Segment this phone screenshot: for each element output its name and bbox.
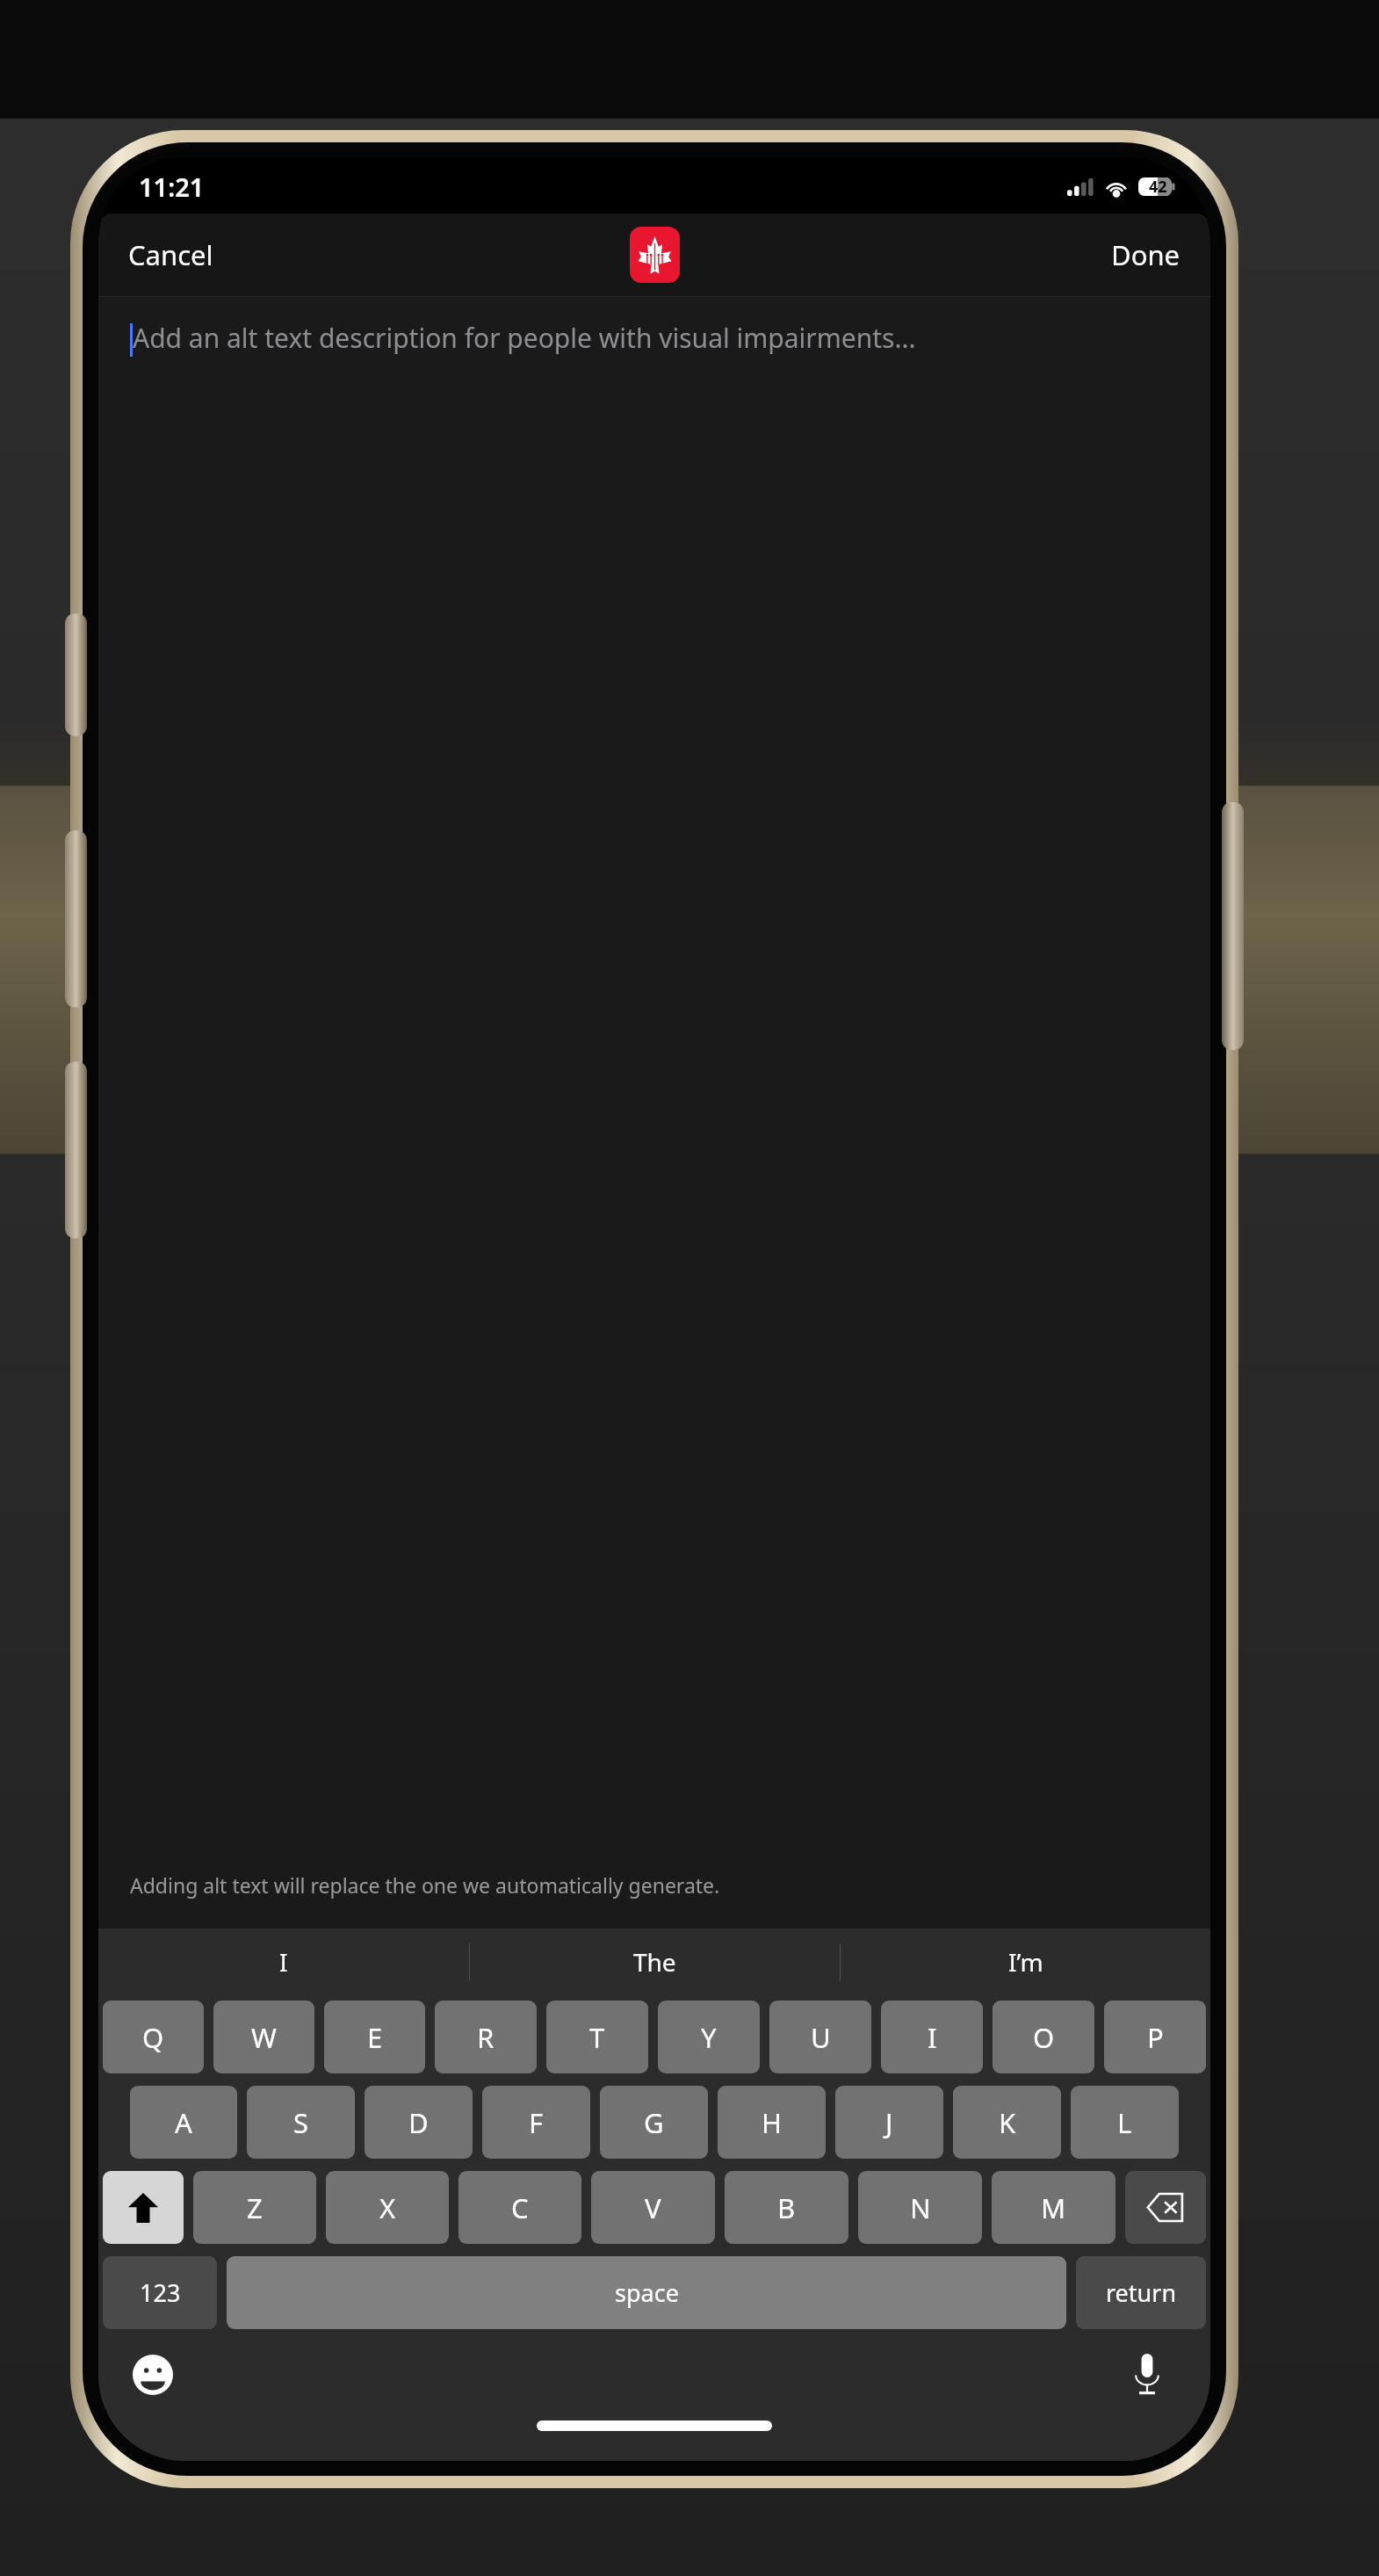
button[interactable]: O: [993, 2001, 1094, 2073]
staticText: E: [367, 2019, 383, 2056]
button[interactable]: App icon: [630, 227, 680, 283]
staticText: B: [777, 2189, 796, 2226]
staticText: R: [477, 2019, 495, 2056]
button[interactable]: The: [470, 1928, 840, 1995]
staticText: A: [175, 2104, 192, 2141]
staticText: S: [293, 2104, 309, 2141]
staticText: 42: [1149, 176, 1167, 198]
staticText: J: [885, 2104, 893, 2141]
staticText: X: [379, 2189, 396, 2226]
button[interactable]: L: [1071, 2086, 1179, 2159]
button[interactable]: T: [546, 2001, 648, 2073]
button[interactable]: Done: [1081, 224, 1210, 286]
button[interactable]: space: [227, 2256, 1066, 2329]
button[interactable]: Emoji: [130, 2352, 176, 2398]
button[interactable]: F: [482, 2086, 590, 2159]
staticText: F: [529, 2104, 544, 2141]
staticText: I: [928, 2019, 937, 2056]
button[interactable]: B: [725, 2171, 848, 2244]
staticText: M: [1041, 2189, 1066, 2226]
button[interactable]: X: [326, 2171, 449, 2244]
button[interactable]: P: [1104, 2001, 1206, 2073]
staticText: Z: [247, 2189, 263, 2226]
button[interactable]: C: [458, 2171, 581, 2244]
button[interactable]: V: [591, 2171, 715, 2244]
staticText: W: [251, 2019, 277, 2056]
staticText: T: [589, 2019, 605, 2056]
staticText: D: [408, 2104, 429, 2141]
staticText: I’m: [1008, 1945, 1043, 1979]
staticText: O: [1033, 2019, 1055, 2056]
staticText: I: [279, 1945, 288, 1979]
staticText: 11:21: [139, 170, 205, 204]
staticText: 123: [140, 2276, 181, 2309]
button[interactable]: I: [881, 2001, 983, 2073]
staticText: U: [811, 2019, 831, 2056]
staticText: K: [999, 2104, 1016, 2141]
button[interactable]: D: [365, 2086, 473, 2159]
button[interactable]: E: [324, 2001, 425, 2073]
staticText: space: [615, 2276, 679, 2309]
staticText: Add an alt text description for people w…: [133, 320, 916, 356]
button[interactable]: Shift: [103, 2171, 184, 2244]
button[interactable]: G: [600, 2086, 708, 2159]
staticText: P: [1147, 2019, 1164, 2056]
staticText: N: [910, 2189, 931, 2226]
button[interactable]: M: [992, 2171, 1115, 2244]
button[interactable]: return: [1076, 2256, 1206, 2329]
staticText: L: [1117, 2104, 1132, 2141]
button[interactable]: Cancel: [98, 224, 243, 286]
staticText: Adding alt text will replace the one we …: [130, 1871, 1193, 1899]
button[interactable]: Backspace: [1125, 2171, 1206, 2244]
staticText: G: [644, 2104, 664, 2141]
staticText: return: [1106, 2276, 1177, 2309]
staticText: Cancel: [128, 236, 213, 273]
button[interactable]: Z: [193, 2171, 316, 2244]
staticText: The: [633, 1945, 676, 1979]
button[interactable]: I’m: [841, 1928, 1210, 1995]
staticText: Q: [142, 2019, 164, 2056]
staticText: V: [645, 2189, 661, 2226]
staticText: Done: [1111, 236, 1180, 273]
button[interactable]: I: [98, 1928, 469, 1995]
staticText: C: [511, 2189, 529, 2226]
button[interactable]: J: [835, 2086, 943, 2159]
button[interactable]: W: [213, 2001, 314, 2073]
button[interactable]: K: [953, 2086, 1061, 2159]
button[interactable]: R: [435, 2001, 537, 2073]
button[interactable]: H: [718, 2086, 826, 2159]
button[interactable]: 123: [103, 2256, 217, 2329]
button[interactable]: Y: [658, 2001, 760, 2073]
staticText: Y: [701, 2019, 717, 2056]
button[interactable]: U: [769, 2001, 871, 2073]
button[interactable]: S: [247, 2086, 355, 2159]
button[interactable]: Q: [103, 2001, 204, 2073]
button[interactable]: Dictation: [1124, 2352, 1170, 2398]
button[interactable]: A: [130, 2086, 237, 2159]
staticText: H: [762, 2104, 782, 2141]
button[interactable]: N: [858, 2171, 982, 2244]
